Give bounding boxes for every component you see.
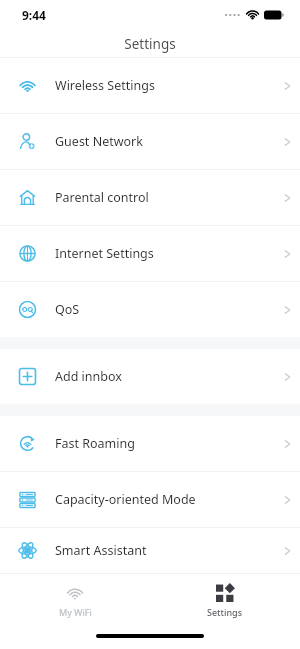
staticText: Capacity-oriented Mode <box>55 491 273 508</box>
staticText: 9:44 <box>22 7 46 23</box>
button[interactable]: Settings <box>150 574 300 628</box>
staticText: QoS <box>55 301 273 318</box>
staticText: Fast Roaming <box>55 435 273 452</box>
button[interactable]: My WiFi <box>0 574 150 628</box>
button[interactable]: Internet Settings <box>0 226 300 281</box>
button[interactable]: Parental control <box>0 170 300 225</box>
button[interactable]: QoS <box>0 282 300 337</box>
staticText: Smart Assistant <box>55 542 273 559</box>
button[interactable]: Fast Roaming <box>0 416 300 471</box>
staticText: Add innbox <box>55 368 273 385</box>
button[interactable]: Guest Network <box>0 114 300 169</box>
button[interactable]: Smart Assistant <box>0 528 300 573</box>
staticText: Settings <box>207 606 243 618</box>
button[interactable]: Capacity-oriented Mode <box>0 472 300 527</box>
staticText: Parental control <box>55 189 273 206</box>
button[interactable]: Wireless Settings <box>0 58 300 113</box>
staticText: Wireless Settings <box>55 77 273 94</box>
staticText: Guest Network <box>55 133 273 150</box>
button[interactable]: Add innbox <box>0 349 300 404</box>
staticText: Internet Settings <box>55 245 273 262</box>
staticText: Settings <box>124 35 176 53</box>
staticText: My WiFi <box>59 606 92 618</box>
